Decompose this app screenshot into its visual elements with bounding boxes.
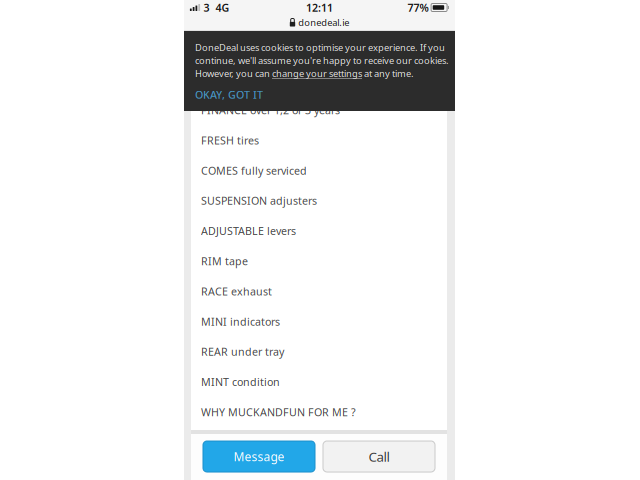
staticText: continue, we'll assume you're happy to r… [195,54,449,67]
staticText: RACE [201,284,228,298]
staticText: under tray [228,345,284,359]
button[interactable]: Call [323,441,435,472]
staticText: indicators [227,314,280,329]
staticText: 77% [408,0,429,15]
staticText: WHY MUCKANDFUN FOR ME ? [201,405,356,419]
staticText: MINT [201,375,229,389]
staticText: over 1,2 or 3 years [247,103,340,117]
staticText: MINI [201,314,227,329]
staticText: RIM [201,254,222,268]
staticText: DoneDeal uses cookies to optimise your e… [195,41,445,54]
staticText: exhaust [228,284,272,298]
staticText: REAR [201,345,228,359]
staticText: 3 [203,0,209,15]
staticText: Message [233,448,284,464]
staticText: OKAY, GOT IT [195,87,263,102]
staticText: Call [368,448,389,465]
staticText: FINANCE [201,103,247,117]
staticText: fully serviced [238,163,307,178]
staticText: donedeal.ie [298,16,349,29]
staticText: FRESH [201,133,234,147]
staticText: SUSPENSION [201,194,267,208]
staticText: levers [264,224,296,238]
staticText: However, you can change your settings at… [195,67,414,80]
staticText: 12:11 [306,0,333,15]
button[interactable]: Message [203,441,315,472]
staticText: ADJUSTABLE [201,224,264,238]
staticText: tires [234,133,259,147]
staticText: condition [229,375,280,389]
staticText: 4G [215,0,229,15]
staticText: adjusters [267,194,317,208]
staticText: tape [222,254,248,268]
button[interactable]: OKAY, GOT IT [195,80,275,100]
staticText: COMES [201,163,238,178]
